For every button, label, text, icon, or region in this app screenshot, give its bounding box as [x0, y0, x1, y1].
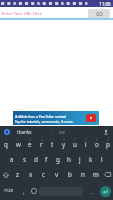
button[interactable]: n [76, 167, 89, 182]
staticText: u [73, 140, 77, 148]
staticText: 5 [52, 138, 54, 142]
other: Play YouTube video [86, 114, 96, 122]
button[interactable]: Backspace [102, 167, 113, 182]
staticText: AdMob has a YouTube series! [15, 114, 67, 119]
button[interactable]: v [50, 167, 63, 182]
button[interactable]: 9 [91, 137, 102, 152]
button[interactable]: 8 [80, 137, 91, 152]
staticText: 0 [107, 138, 109, 142]
staticText: . [91, 188, 93, 195]
staticText: 11:06 [99, 1, 111, 7]
button[interactable]: b [63, 167, 76, 182]
staticText: y [62, 140, 66, 148]
staticText: i [85, 140, 87, 148]
staticText: g [56, 155, 60, 163]
staticText: thanks [17, 129, 32, 135]
staticText: Enter Your URL Here [2, 11, 43, 17]
button[interactable]: 2 [12, 137, 24, 152]
staticText: f [45, 155, 48, 163]
button[interactable]: g [52, 152, 63, 167]
staticText: ?123 [4, 188, 14, 194]
button[interactable]: 7 [69, 137, 80, 152]
staticText: e [28, 140, 32, 148]
staticText: o [95, 140, 99, 148]
button[interactable]: 4 [36, 137, 47, 152]
staticText: b [68, 170, 72, 178]
button[interactable]: 3 [24, 137, 36, 152]
staticText: w [16, 140, 21, 148]
staticText: a [10, 155, 14, 163]
button[interactable]: Google [4, 129, 10, 135]
staticText: q [4, 140, 8, 148]
staticText: 7 [74, 138, 76, 142]
button[interactable]: z [11, 167, 24, 182]
staticText: d [34, 155, 38, 163]
staticText: 6 [63, 138, 65, 142]
button[interactable]: l [96, 152, 107, 167]
button[interactable]: h [63, 152, 74, 167]
staticText: r [40, 140, 43, 148]
button[interactable]: . [83, 182, 100, 200]
button[interactable]: 5 [47, 137, 58, 152]
button[interactable]: thanks [17, 129, 32, 135]
button[interactable]: f [41, 152, 52, 167]
button[interactable]: AdMob has a YouTube series! [13, 111, 99, 125]
staticText: 3 [29, 138, 31, 142]
button[interactable]: Voice input [103, 129, 109, 135]
staticText: Tap for tutorials, screencasts, & more. [15, 119, 74, 123]
staticText: k [89, 155, 93, 163]
button[interactable]: we [59, 129, 65, 135]
staticText: 1 [5, 138, 7, 142]
staticText: t [51, 140, 54, 148]
button[interactable]: GO [88, 9, 110, 19]
staticText: we [59, 129, 65, 135]
button[interactable]: k [85, 152, 96, 167]
button[interactable]: d [30, 152, 41, 167]
button[interactable]: Enter [100, 186, 111, 197]
staticText: p [106, 140, 110, 148]
staticText: c [42, 170, 45, 178]
staticText: v [55, 170, 59, 178]
button[interactable]: 1 [0, 137, 12, 152]
button[interactable]: c [37, 167, 50, 182]
button[interactable]: Shift [0, 167, 11, 182]
staticText: 4 [41, 138, 43, 142]
button[interactable]: 0 [102, 137, 113, 152]
staticText: n [81, 170, 85, 178]
staticText: m [93, 170, 99, 178]
button[interactable]: j [74, 152, 85, 167]
staticText: 8 [85, 138, 87, 142]
button[interactable]: s [18, 152, 30, 167]
staticText: 2 [17, 138, 19, 142]
button[interactable]: 6 [58, 137, 69, 152]
staticText: z [16, 170, 19, 178]
staticText: l [101, 155, 103, 163]
staticText: GO [96, 11, 103, 17]
button[interactable]: m [89, 167, 102, 182]
staticText: h [67, 155, 71, 163]
staticText: 9 [96, 138, 98, 142]
button[interactable]: Enter Your URL Here [2, 7, 88, 20]
staticText: , [23, 188, 25, 195]
button[interactable]: Emoji [29, 182, 39, 200]
button[interactable]: a [6, 152, 18, 167]
staticText: j [79, 155, 81, 163]
button[interactable]: ?123 [0, 182, 18, 200]
button[interactable]: , [18, 182, 29, 200]
staticText: x [29, 170, 33, 178]
staticText: s [23, 155, 26, 163]
button[interactable]: x [24, 167, 37, 182]
